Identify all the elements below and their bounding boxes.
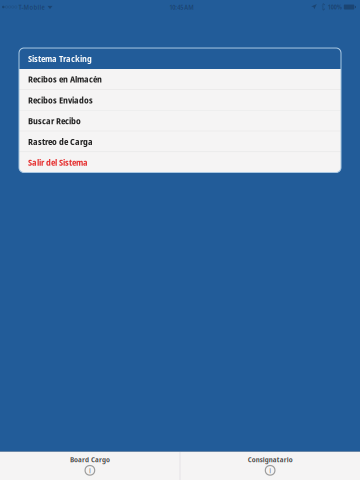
button[interactable]: Board Cargo [0,452,180,480]
staticText: 10:45 AM [169,2,194,12]
button[interactable]: Recibos en Almacén [19,69,341,90]
staticText: i [269,465,271,475]
button[interactable]: Salir del Sistema [19,152,341,172]
staticText: Recibos Enviados [28,94,93,106]
button[interactable]: Buscar Recibo [19,111,341,131]
button[interactable]: Rastreo de Carga [19,131,341,152]
staticText: Board Cargo [70,454,110,464]
staticText: Rastreo de Carga [28,135,93,148]
staticText: T-Mobile [18,2,44,12]
staticText: Buscar Recibo [28,115,81,127]
staticText: i [89,465,91,475]
staticText: Consignatario [248,454,293,464]
button[interactable]: Consignatario [180,452,360,480]
staticText: Recibos en Almacén [28,73,102,85]
staticText: Salir del Sistema [28,156,88,168]
button[interactable]: Recibos Enviados [19,90,341,111]
staticText: 100% [328,3,342,11]
staticText: Sistema Tracking [28,52,92,65]
